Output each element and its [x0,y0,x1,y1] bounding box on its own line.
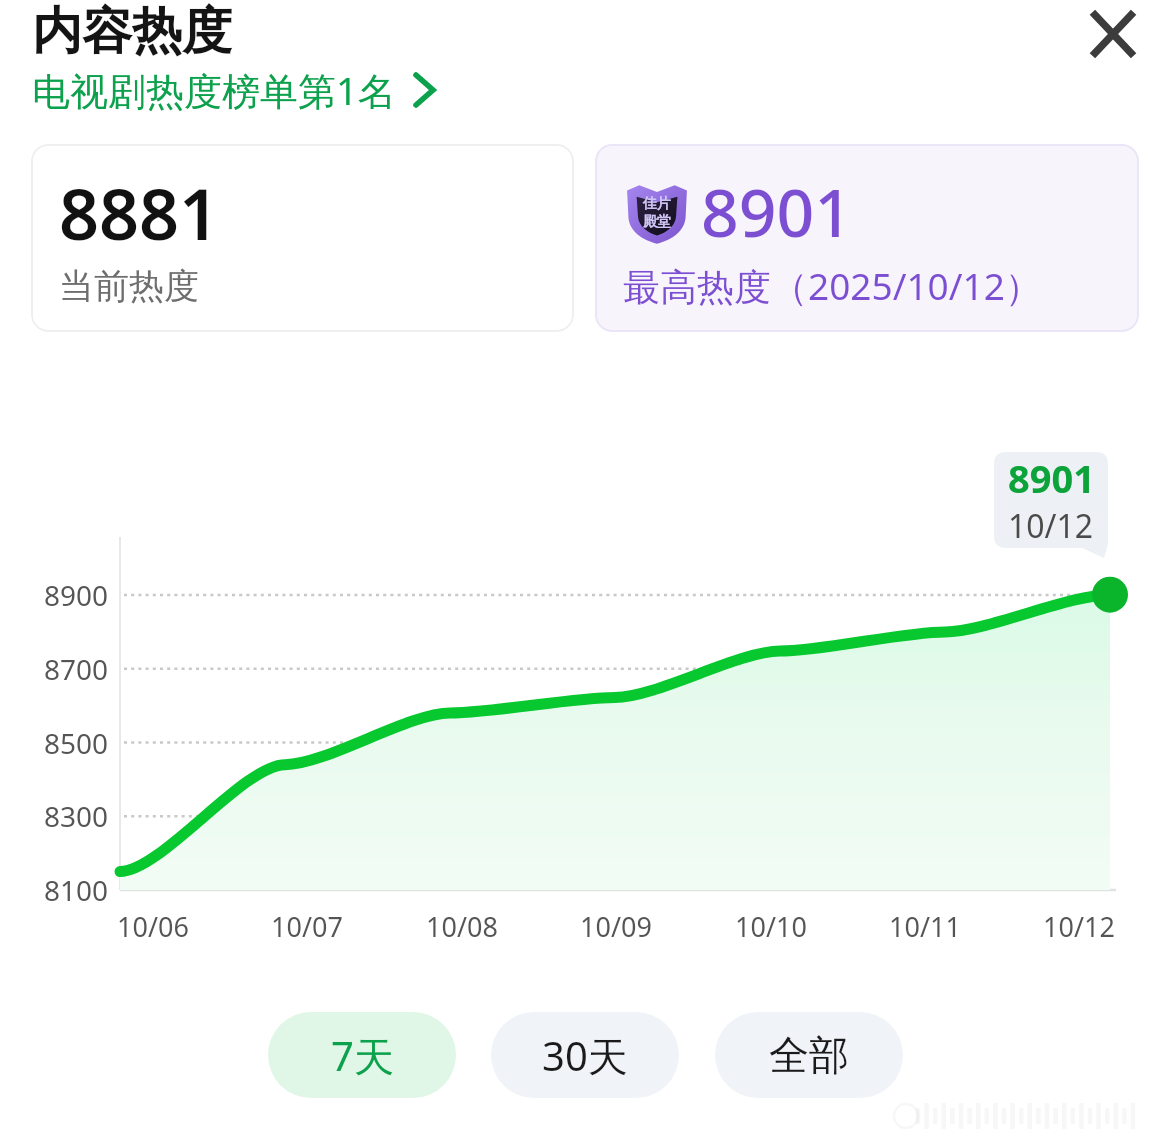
staticText: 8900 [8,576,108,614]
button[interactable]: 30天 [491,1012,679,1098]
staticText: 全部 [769,1030,849,1080]
button[interactable]: 8881 [31,144,574,332]
staticText: 电视剧热度榜单第1名 [32,64,396,116]
staticText: 10/07 [237,908,377,945]
staticText: 10/12 [1009,908,1149,945]
button[interactable]: 全部 [715,1012,903,1098]
button[interactable]: Close [1078,0,1148,69]
staticText: 10/08 [392,908,532,945]
staticText: 8901 [701,166,853,256]
staticText: 8500 [8,724,108,762]
staticText: 殿堂 [643,213,671,231]
button[interactable]: 佳片 [595,144,1139,332]
button[interactable]: 7天 [268,1012,456,1098]
staticText: 10/06 [83,908,223,945]
staticText: 内容热度 [32,0,232,63]
staticText: 8100 [8,871,108,909]
staticText: 8881 [59,165,220,260]
staticText: 8300 [8,797,108,835]
staticText: 当前热度 [59,264,199,308]
staticText: 10/10 [701,908,841,945]
staticText: 10/12 [1008,504,1094,548]
staticText: 8901 [1008,452,1095,504]
button[interactable]: 电视剧热度榜单第1名 [32,64,437,116]
staticText: 7天 [331,1028,394,1083]
staticText: 8700 [8,650,108,688]
staticText: 最高热度（2025/10/12） [623,260,1042,311]
staticText: 佳片 [643,195,671,213]
staticText: 10/11 [855,908,995,945]
staticText: 30天 [542,1028,628,1083]
staticText: 10/09 [546,908,686,945]
